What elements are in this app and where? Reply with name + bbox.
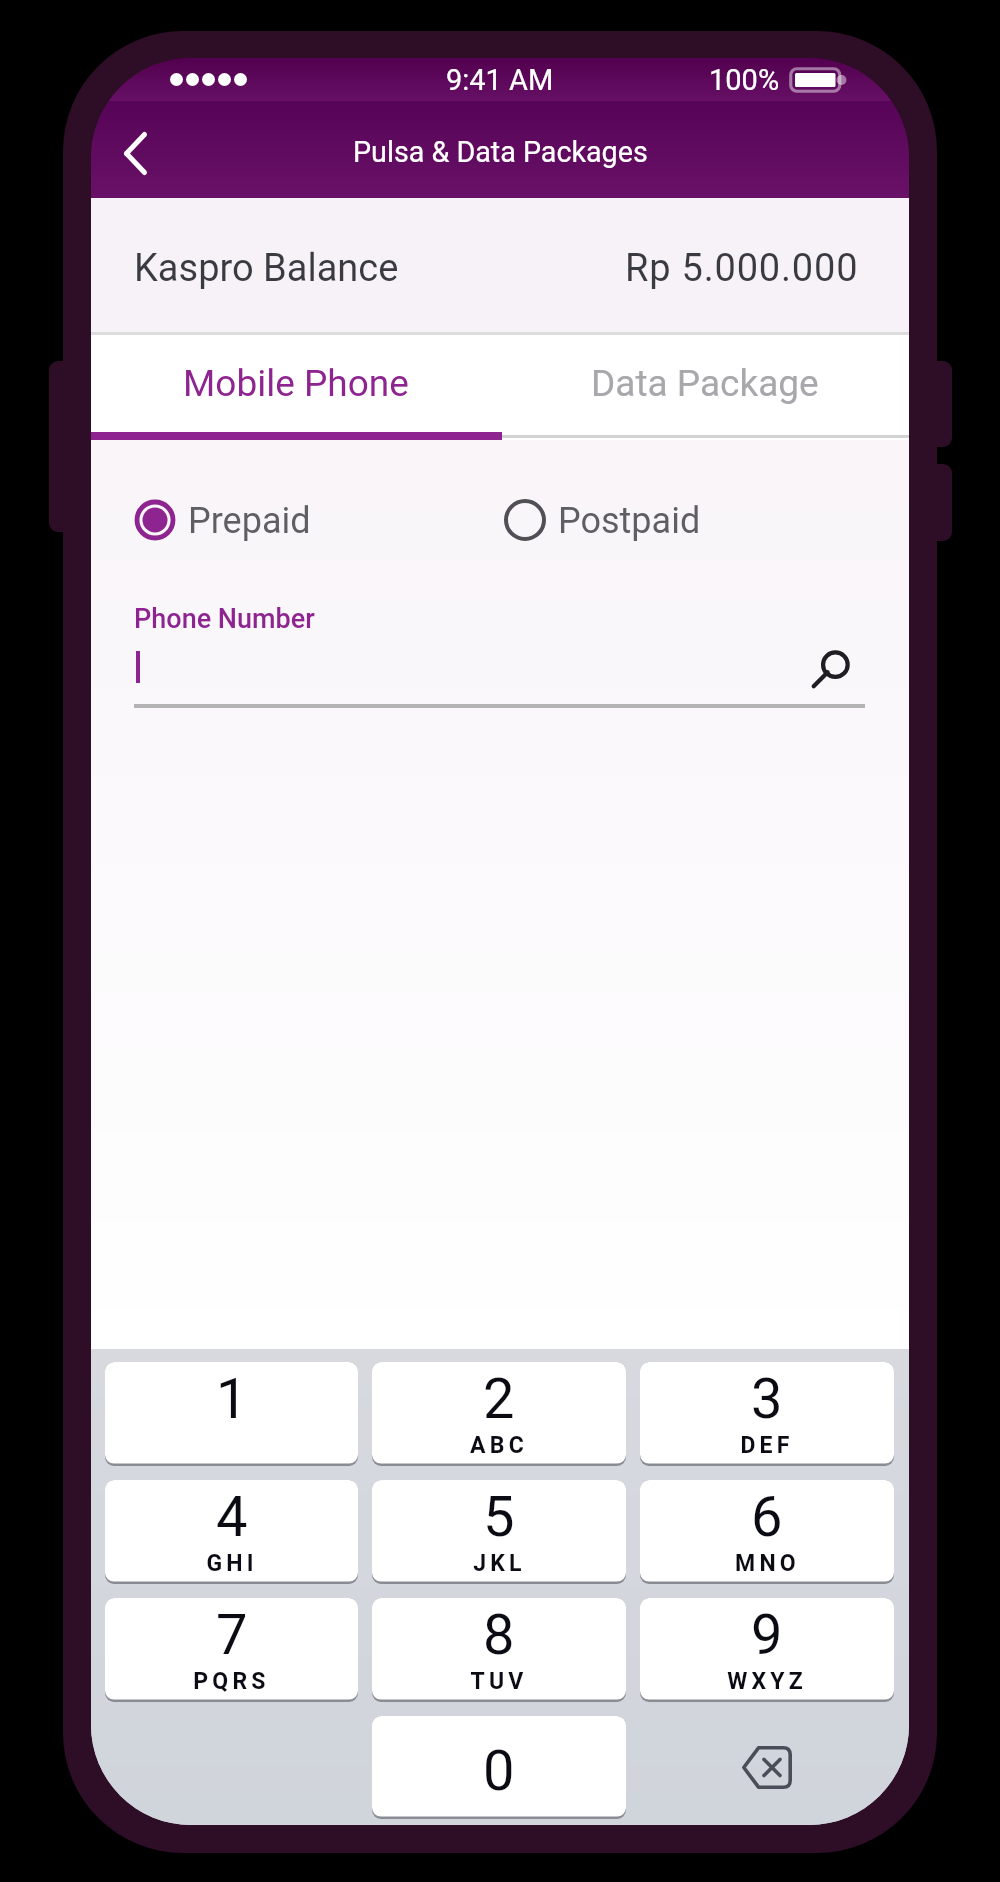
staticText: Postpaid xyxy=(558,500,701,542)
staticText: TUV xyxy=(470,1668,528,1695)
staticText: 6 xyxy=(751,1484,783,1550)
staticText: 3 xyxy=(751,1366,783,1432)
button[interactable]: 6 xyxy=(640,1480,894,1584)
staticText: Phone Number xyxy=(134,603,315,635)
staticText: 7 xyxy=(216,1602,248,1668)
button[interactable]: 1 xyxy=(105,1362,358,1466)
staticText: MNO xyxy=(735,1550,800,1577)
staticText: 9 xyxy=(751,1602,783,1668)
staticText: Rp 5.000.000 xyxy=(625,246,859,291)
button[interactable]: Postpaid xyxy=(501,496,701,544)
staticText: 0 xyxy=(483,1738,515,1804)
staticText: WXYZ xyxy=(727,1668,807,1695)
staticText: 8 xyxy=(483,1602,515,1668)
staticText: Pulsa & Data Packages xyxy=(353,135,648,169)
staticText: 5 xyxy=(483,1484,515,1550)
button[interactable]: 4 xyxy=(105,1480,358,1584)
button[interactable]: Search xyxy=(805,643,857,695)
staticText: PQRS xyxy=(193,1668,270,1695)
button[interactable]: Prepaid xyxy=(131,496,311,544)
button[interactable]: 3 xyxy=(640,1362,894,1466)
staticText: Data Package xyxy=(591,362,819,405)
button[interactable]: 5 xyxy=(372,1480,626,1584)
button[interactable]: 7 xyxy=(105,1598,358,1702)
staticText: Prepaid xyxy=(188,500,311,542)
button[interactable]: Data Package xyxy=(500,335,909,440)
button[interactable]: 0 xyxy=(372,1716,626,1819)
staticText: GHI xyxy=(206,1550,258,1577)
button[interactable]: Mobile Phone xyxy=(91,335,500,440)
button[interactable]: Backspace xyxy=(640,1716,894,1819)
staticText: 9:41 AM xyxy=(446,63,554,97)
staticText: Mobile Phone xyxy=(183,362,409,405)
button[interactable]: 8 xyxy=(372,1598,626,1702)
staticText: Kaspro Balance xyxy=(134,246,399,291)
staticText: 1 xyxy=(216,1366,248,1432)
staticText: 100% xyxy=(709,63,780,97)
staticText: 4 xyxy=(216,1484,248,1550)
staticText: JKL xyxy=(473,1550,526,1577)
staticText: ABC xyxy=(470,1432,528,1459)
staticText: 2 xyxy=(483,1366,515,1432)
button[interactable]: Back xyxy=(105,120,165,180)
staticText: DEF xyxy=(740,1432,794,1459)
button[interactable]: 9 xyxy=(640,1598,894,1702)
button[interactable]: 2 xyxy=(372,1362,626,1466)
